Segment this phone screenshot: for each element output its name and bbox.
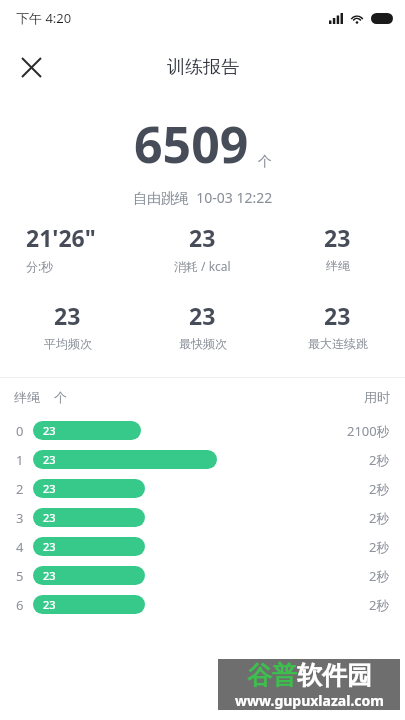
staticText: 3: [16, 509, 24, 527]
button[interactable]: 3: [0, 503, 405, 532]
staticText: 23: [43, 510, 56, 525]
staticText: 5: [16, 567, 24, 585]
staticText: 4: [16, 538, 24, 556]
button[interactable]: Close: [8, 44, 54, 90]
staticText: 23: [324, 300, 351, 331]
staticText: 23: [43, 568, 56, 583]
staticText: 0: [16, 422, 24, 440]
staticText: 23: [54, 300, 81, 331]
staticText: 绊绳: [14, 389, 40, 405]
staticText: 6509: [134, 110, 249, 178]
button[interactable]: 0: [0, 416, 405, 445]
staticText: 2秒: [369, 451, 390, 469]
staticText: 谷普: [247, 660, 297, 691]
staticText: 23: [324, 222, 351, 253]
staticText: 2秒: [369, 567, 390, 585]
staticText: 23: [43, 597, 56, 612]
button[interactable]: 5: [0, 561, 405, 590]
staticText: 23: [43, 423, 56, 438]
staticText: 自由跳绳 10-03 12:22: [133, 188, 273, 207]
staticText: 2秒: [369, 480, 390, 498]
button[interactable]: 4: [0, 532, 405, 561]
staticText: 23: [43, 539, 56, 554]
staticText: 1: [16, 451, 24, 469]
staticText: 软件园: [297, 660, 372, 691]
staticText: 2: [16, 480, 24, 498]
button[interactable]: 6: [0, 590, 405, 619]
staticText: 2秒: [369, 596, 390, 614]
staticText: 23: [43, 481, 56, 496]
staticText: 2100秒: [347, 422, 390, 440]
staticText: 用时: [364, 389, 390, 405]
staticText: 消耗 / kcal: [174, 258, 231, 274]
staticText: 23: [189, 222, 216, 253]
staticText: 2秒: [369, 509, 390, 527]
staticText: 个: [54, 389, 67, 405]
staticText: www.gupuxlazal.com: [235, 691, 384, 710]
staticText: 23: [189, 300, 216, 331]
staticText: 分:秒: [26, 258, 54, 274]
staticText: 平均频次: [44, 336, 92, 351]
staticText: 2秒: [369, 538, 390, 556]
staticText: 绊绳: [326, 258, 350, 273]
staticText: 最大连续跳: [308, 336, 368, 351]
staticText: 个: [258, 153, 272, 171]
button[interactable]: 1: [0, 445, 405, 474]
staticText: 下午 4:20: [16, 9, 72, 27]
staticText: 训练报告: [167, 56, 239, 79]
staticText: 6: [16, 596, 24, 614]
staticText: 23: [43, 452, 56, 467]
button[interactable]: 2: [0, 474, 405, 503]
staticText: 21'26": [26, 222, 96, 253]
staticText: 最快频次: [179, 336, 227, 351]
